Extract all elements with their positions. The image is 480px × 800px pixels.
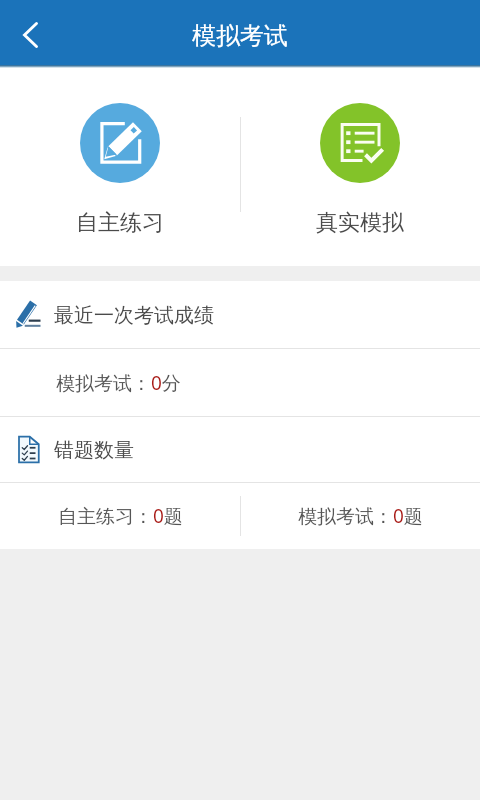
- button[interactable]: 真实模拟: [320, 103, 400, 183]
- staticText: 错题数量: [54, 438, 134, 463]
- staticText: 模拟考试：0题: [298, 503, 423, 529]
- staticText: 最近一次考试成绩: [54, 303, 214, 328]
- staticText: 模拟考试: [192, 21, 288, 51]
- button[interactable]: 错题数量: [0, 417, 480, 482]
- button[interactable]: 最近一次考试成绩: [0, 281, 480, 348]
- staticText: 模拟考试：0分: [56, 370, 181, 396]
- staticText: 自主练习：0题: [58, 503, 183, 529]
- staticText: 自主练习: [76, 209, 164, 237]
- button[interactable]: Back: [6, 2, 54, 67]
- button[interactable]: 自主练习: [80, 103, 160, 183]
- staticText: 真实模拟: [316, 209, 404, 237]
